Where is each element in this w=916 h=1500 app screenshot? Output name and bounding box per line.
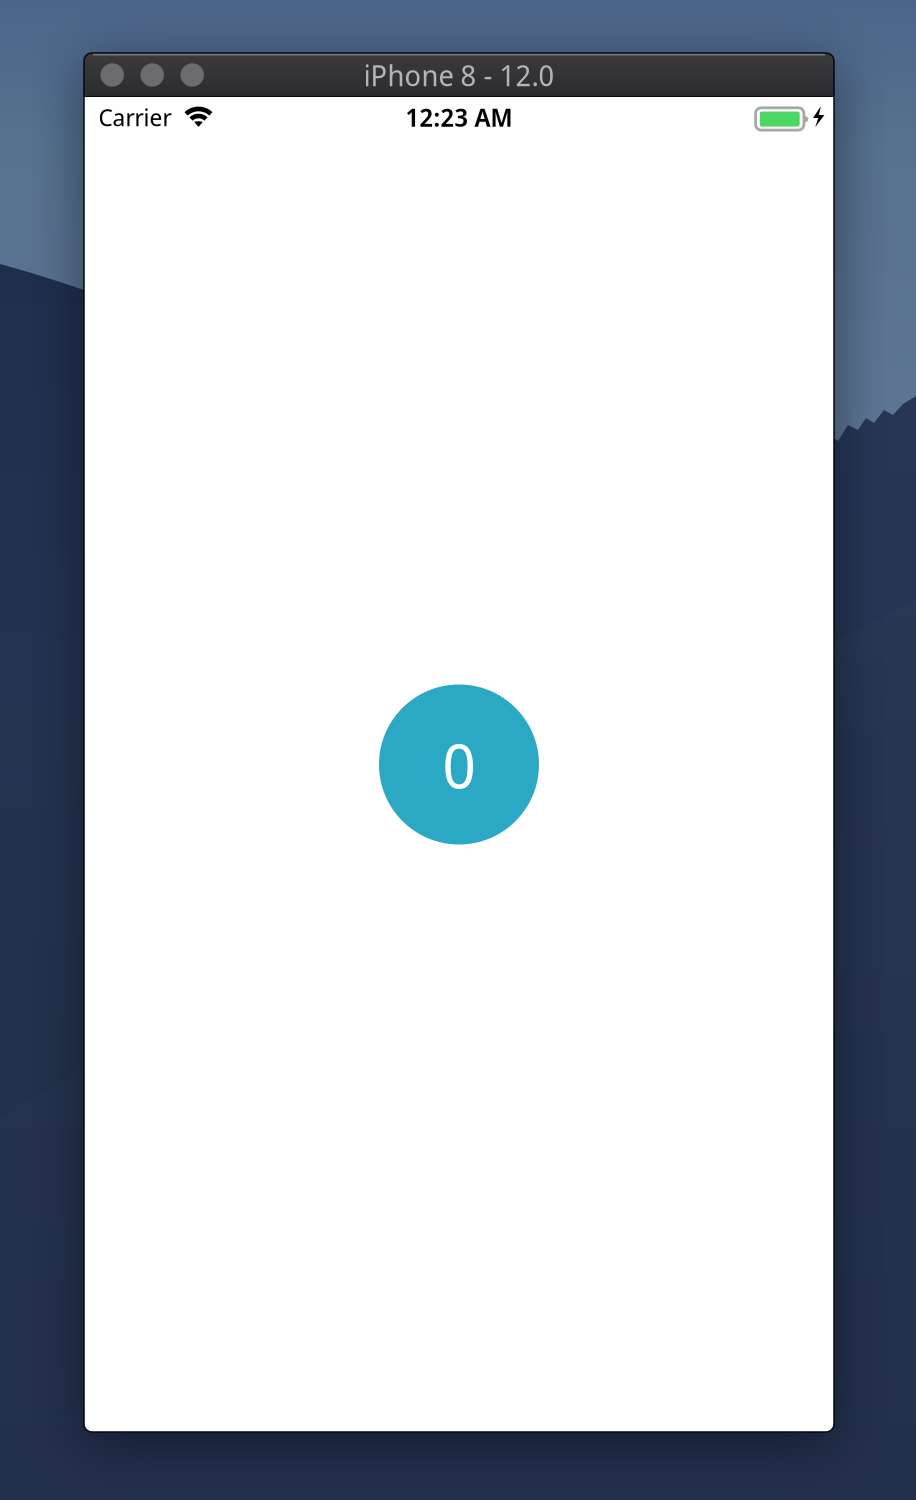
staticText: 0 bbox=[442, 722, 475, 807]
button[interactable]: 0 bbox=[379, 684, 539, 844]
staticText: iPhone 8 - 12.0 bbox=[363, 55, 554, 95]
button[interactable]: Window control bbox=[140, 63, 164, 87]
button[interactable]: Window control bbox=[100, 63, 124, 87]
staticText: 12:23 AM bbox=[405, 100, 512, 134]
staticText: Carrier bbox=[98, 101, 171, 133]
button[interactable]: Window control bbox=[180, 63, 204, 87]
